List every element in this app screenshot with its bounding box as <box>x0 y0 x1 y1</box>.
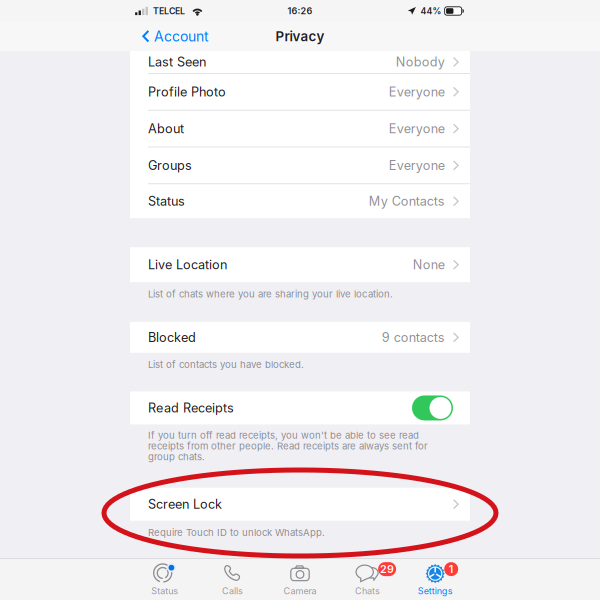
staticText: Status <box>151 585 178 596</box>
staticText: Everyone <box>389 121 445 136</box>
staticText: About <box>148 121 184 136</box>
staticText: List of contacts you have blocked. <box>148 359 304 370</box>
button[interactable]: 29 <box>334 559 401 599</box>
staticText: Blocked <box>148 330 196 345</box>
staticText: Calls <box>222 585 243 596</box>
button[interactable]: Camera <box>266 559 334 599</box>
button[interactable]: Live Location <box>130 247 470 282</box>
staticText: Everyone <box>389 158 445 173</box>
staticText: My Contacts <box>369 193 445 209</box>
button[interactable]: Calls <box>199 559 266 599</box>
staticText: 29 <box>380 563 394 576</box>
staticText: Live Location <box>148 257 227 272</box>
staticText: Camera <box>283 585 316 596</box>
staticText: 44% <box>420 6 441 16</box>
staticText: Groups <box>148 158 192 173</box>
staticText: Status <box>148 193 185 209</box>
staticText: group chats. <box>148 451 205 463</box>
button[interactable]: Profile Photo <box>130 74 470 110</box>
staticText: List of chats where you are sharing your… <box>148 288 393 300</box>
button[interactable]: About <box>130 111 470 147</box>
button[interactable]: Blocked <box>130 322 470 353</box>
button[interactable]: Last Seen <box>130 51 470 73</box>
button[interactable]: Groups <box>130 147 470 183</box>
staticText: 9 contacts <box>382 330 445 345</box>
button[interactable]: 1 <box>401 559 469 599</box>
staticText: Account <box>154 28 209 45</box>
staticText: Profile Photo <box>148 84 226 99</box>
staticText: Require Touch ID to unlock WhatsApp. <box>148 527 325 538</box>
button[interactable]: Status <box>131 559 199 599</box>
staticText: Privacy <box>275 28 324 44</box>
staticText: receipts from other people. Read receipt… <box>148 440 428 452</box>
staticText: Last Seen <box>148 54 206 70</box>
button[interactable]: Read Receipts <box>130 391 470 424</box>
button[interactable]: Status <box>130 184 470 218</box>
staticText: If you turn off read receipts, you won't… <box>148 429 419 441</box>
staticText: None <box>413 257 445 272</box>
staticText: 1 <box>449 563 454 576</box>
staticText: Nobody <box>396 54 445 70</box>
staticText: Screen Lock <box>148 496 222 512</box>
button[interactable]: Screen Lock <box>130 488 470 521</box>
staticText: Settings <box>418 585 453 596</box>
staticText: 16:26 <box>287 5 312 16</box>
staticText: TELCEL <box>153 6 185 16</box>
button[interactable]: Account <box>0 22 209 51</box>
staticText: Read Receipts <box>148 400 234 416</box>
staticText: Everyone <box>389 84 445 99</box>
staticText: Chats <box>355 585 380 596</box>
